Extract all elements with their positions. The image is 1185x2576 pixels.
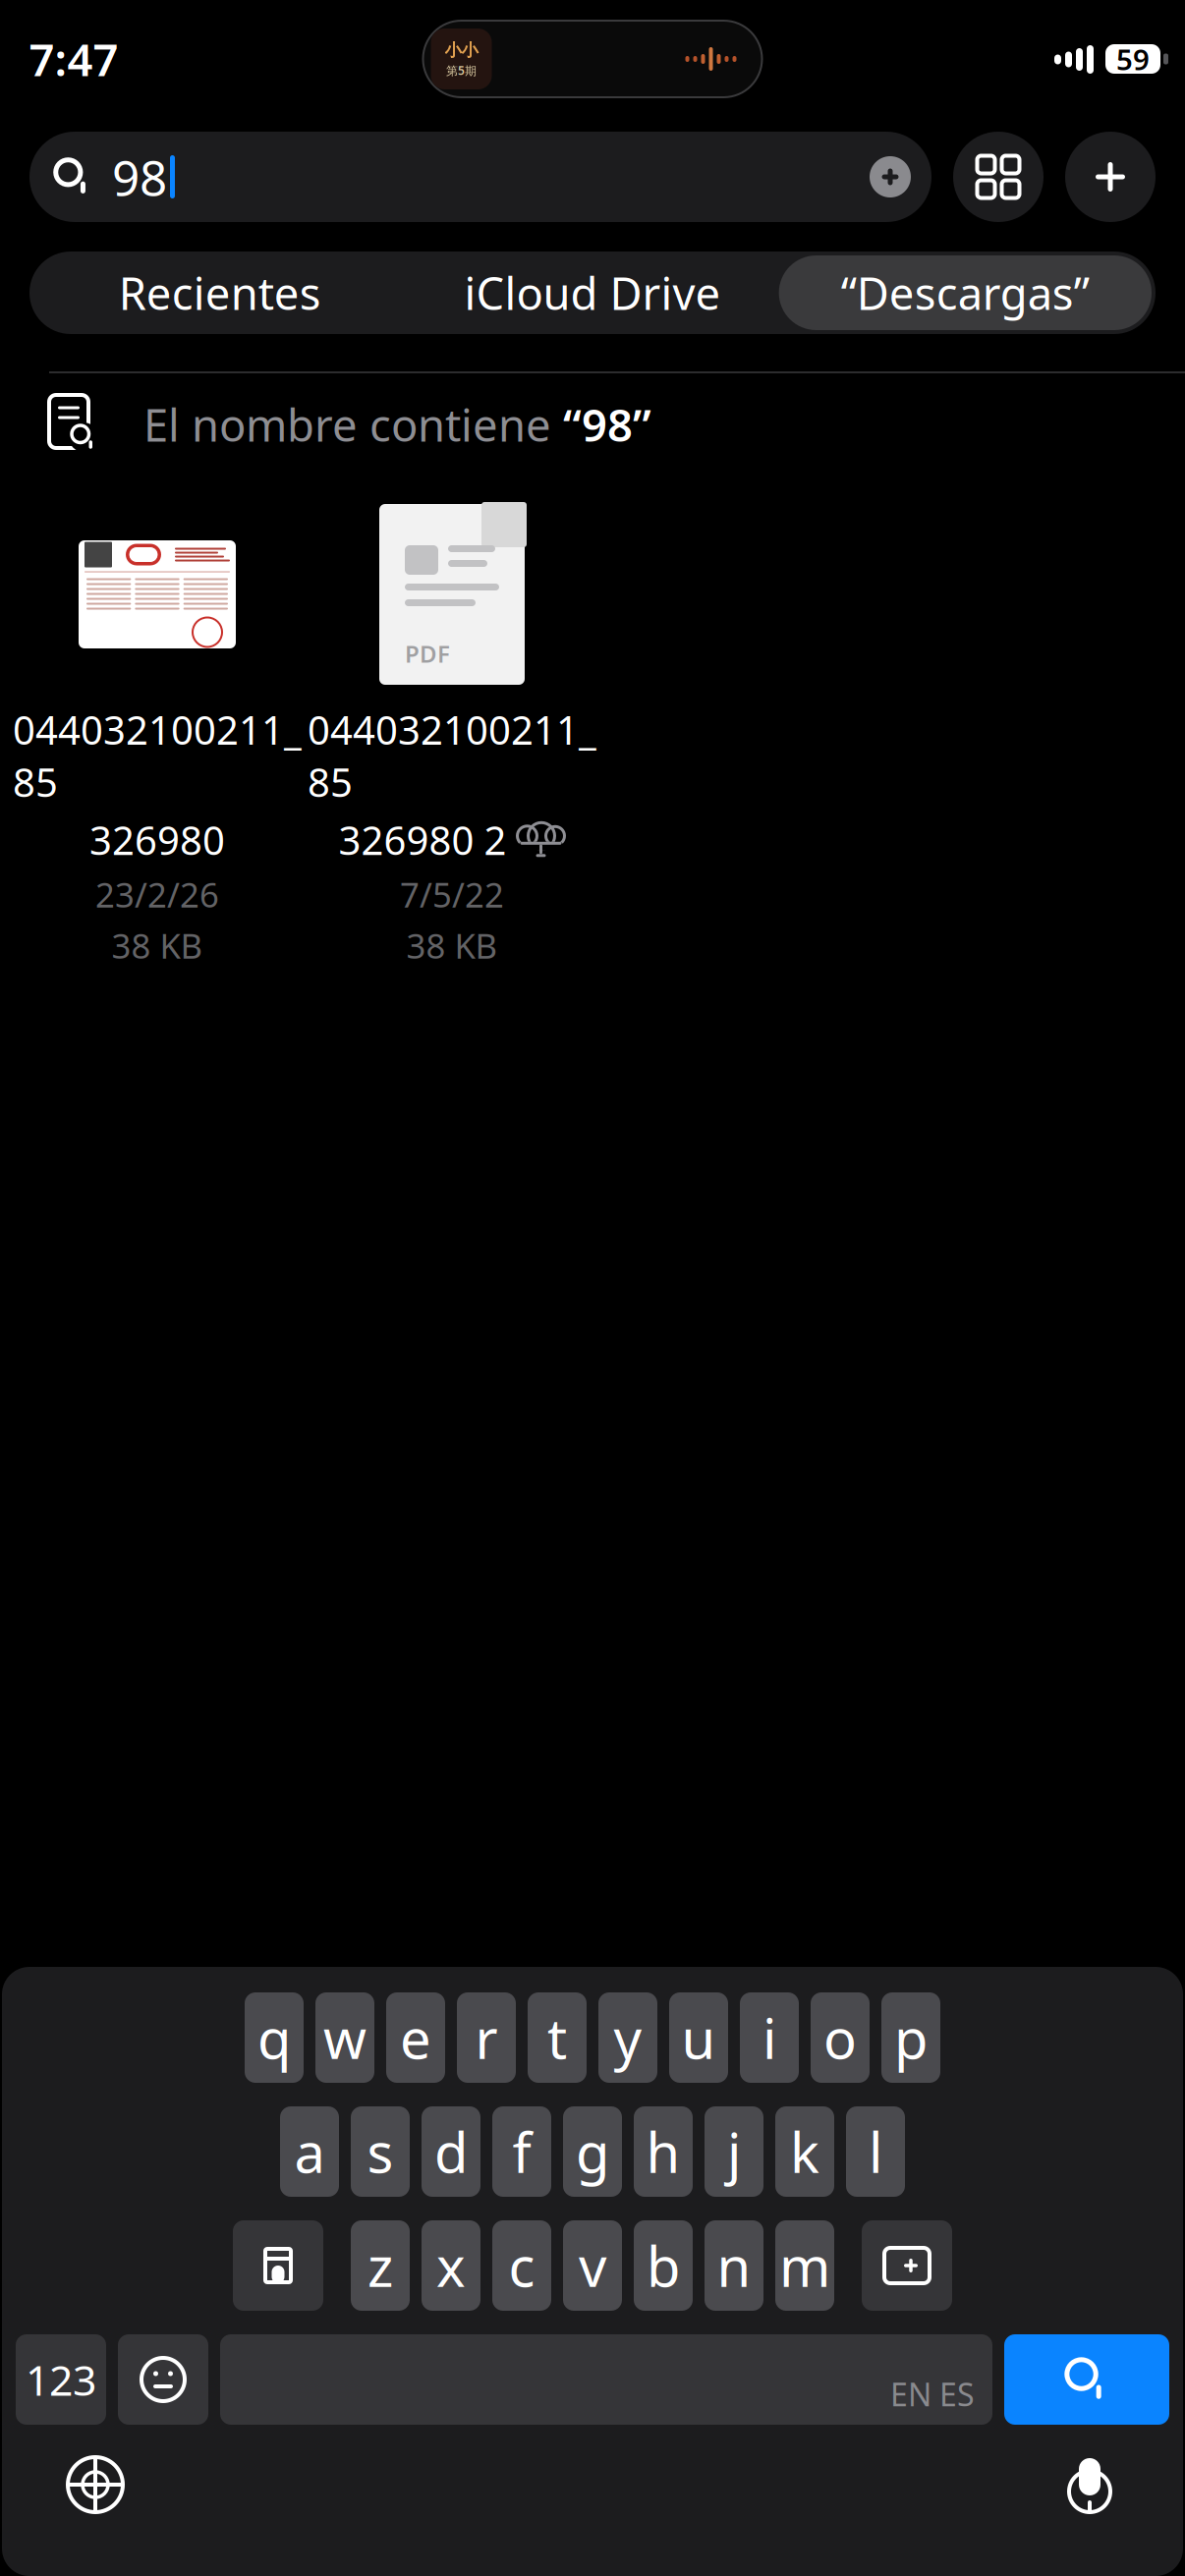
button[interactable]: g: [563, 2106, 622, 2197]
button[interactable]: x: [422, 2220, 480, 2311]
staticText: c: [508, 2229, 535, 2302]
button[interactable]: h: [634, 2106, 693, 2197]
button[interactable]: j: [705, 2106, 763, 2197]
staticText: p: [894, 2001, 928, 2074]
button[interactable]: “Descargas”: [779, 255, 1152, 330]
staticText: d: [434, 2115, 468, 2188]
staticText: b: [647, 2229, 680, 2302]
button[interactable]: Change view: [953, 132, 1044, 222]
button[interactable]: n: [705, 2220, 763, 2311]
staticText: m: [779, 2229, 830, 2302]
staticText: y: [614, 2001, 642, 2074]
button[interactable]: El nombre contiene: [0, 373, 1185, 476]
button[interactable]: 044032100211_85: [10, 501, 305, 968]
staticText: PDF: [405, 638, 450, 669]
staticText: EN ES: [890, 2373, 975, 2415]
staticText: t: [547, 2001, 567, 2074]
button[interactable]: Shift: [233, 2220, 323, 2311]
staticText: 7/5/22: [400, 872, 504, 917]
button[interactable]: p: [881, 1992, 940, 2083]
button[interactable]: k: [775, 2106, 834, 2197]
staticText: i: [762, 2001, 776, 2074]
staticText: 326980: [89, 814, 225, 866]
staticText: 123: [26, 2352, 96, 2407]
staticText: w: [323, 2001, 367, 2074]
button[interactable]: Emoji: [118, 2334, 208, 2425]
button[interactable]: s: [351, 2106, 410, 2197]
button[interactable]: Recientes: [33, 255, 406, 330]
staticText: h: [646, 2115, 680, 2188]
button[interactable]: w: [315, 1992, 374, 2083]
staticText: El nombre contiene: [143, 395, 563, 454]
staticText: n: [717, 2229, 751, 2302]
button[interactable]: Switch keyboard: [41, 2431, 149, 2539]
button[interactable]: iCloud Drive: [406, 255, 779, 330]
button[interactable]: Dictation: [1036, 2431, 1144, 2539]
staticText: f: [512, 2115, 531, 2188]
staticText: k: [790, 2115, 819, 2188]
button[interactable]: f: [492, 2106, 551, 2197]
staticText: 小小: [445, 40, 478, 61]
button[interactable]: m: [775, 2220, 834, 2311]
staticText: x: [436, 2229, 466, 2302]
button[interactable]: l: [846, 2106, 905, 2197]
button[interactable]: r: [457, 1992, 516, 2083]
button[interactable]: q: [245, 1992, 304, 2083]
button[interactable]: Cancel search: [1065, 132, 1156, 222]
staticText: “Descargas”: [841, 263, 1089, 322]
button[interactable]: i: [740, 1992, 799, 2083]
button[interactable]: Space: [220, 2334, 992, 2425]
staticText: 38 KB: [406, 923, 498, 968]
staticText: “98”: [563, 395, 651, 454]
button[interactable]: d: [422, 2106, 480, 2197]
button[interactable]: b: [634, 2220, 693, 2311]
button[interactable]: c: [492, 2220, 551, 2311]
staticText: u: [681, 2001, 716, 2074]
button[interactable]: Search: [1004, 2334, 1169, 2425]
staticText: 38 KB: [112, 923, 203, 968]
staticText: 044032100211_85: [13, 703, 302, 808]
staticText: l: [869, 2115, 882, 2188]
staticText: 98: [112, 145, 167, 209]
button[interactable]: Clear text: [861, 147, 920, 206]
staticText: q: [257, 2001, 291, 2074]
button[interactable]: 123: [16, 2334, 106, 2425]
staticText: 7:47: [29, 29, 118, 89]
staticText: 59: [1116, 40, 1150, 78]
button[interactable]: y: [598, 1992, 657, 2083]
button[interactable]: z: [351, 2220, 410, 2311]
staticText: r: [475, 2001, 498, 2074]
button[interactable]: PDF: [305, 501, 599, 968]
staticText: j: [727, 2115, 741, 2188]
button[interactable]: v: [563, 2220, 622, 2311]
staticText: 第5期: [446, 63, 477, 78]
button[interactable]: a: [280, 2106, 339, 2197]
button[interactable]: t: [528, 1992, 587, 2083]
staticText: o: [823, 2001, 857, 2074]
staticText: g: [576, 2115, 609, 2188]
staticText: e: [400, 2001, 431, 2074]
staticText: Recientes: [119, 263, 321, 322]
staticText: a: [294, 2115, 325, 2188]
button[interactable]: o: [811, 1992, 870, 2083]
staticText: 23/2/26: [95, 872, 219, 917]
staticText: iCloud Drive: [464, 263, 721, 322]
staticText: 326980 2: [339, 814, 507, 866]
staticText: v: [579, 2229, 606, 2302]
button[interactable]: Delete: [862, 2220, 952, 2311]
staticText: s: [367, 2115, 394, 2188]
staticText: z: [367, 2229, 393, 2302]
staticText: 044032100211_85: [308, 703, 596, 808]
button[interactable]: u: [669, 1992, 728, 2083]
button[interactable]: e: [386, 1992, 445, 2083]
